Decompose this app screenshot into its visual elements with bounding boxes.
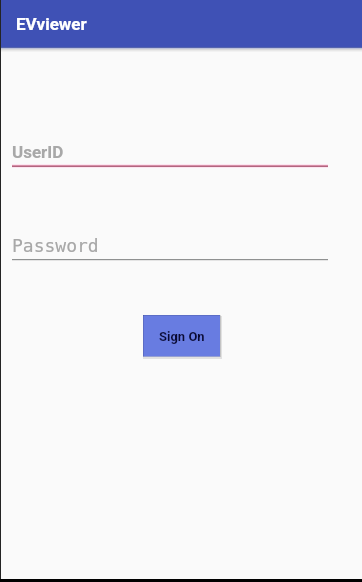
button[interactable]: UserID	[12, 129, 328, 167]
staticText: EVviewer	[16, 14, 87, 34]
staticText: Password	[12, 235, 99, 256]
staticText: Sign On	[159, 329, 205, 344]
button[interactable]: Sign On	[143, 315, 220, 357]
button[interactable]: Password	[12, 223, 328, 260]
staticText: UserID	[12, 142, 64, 162]
